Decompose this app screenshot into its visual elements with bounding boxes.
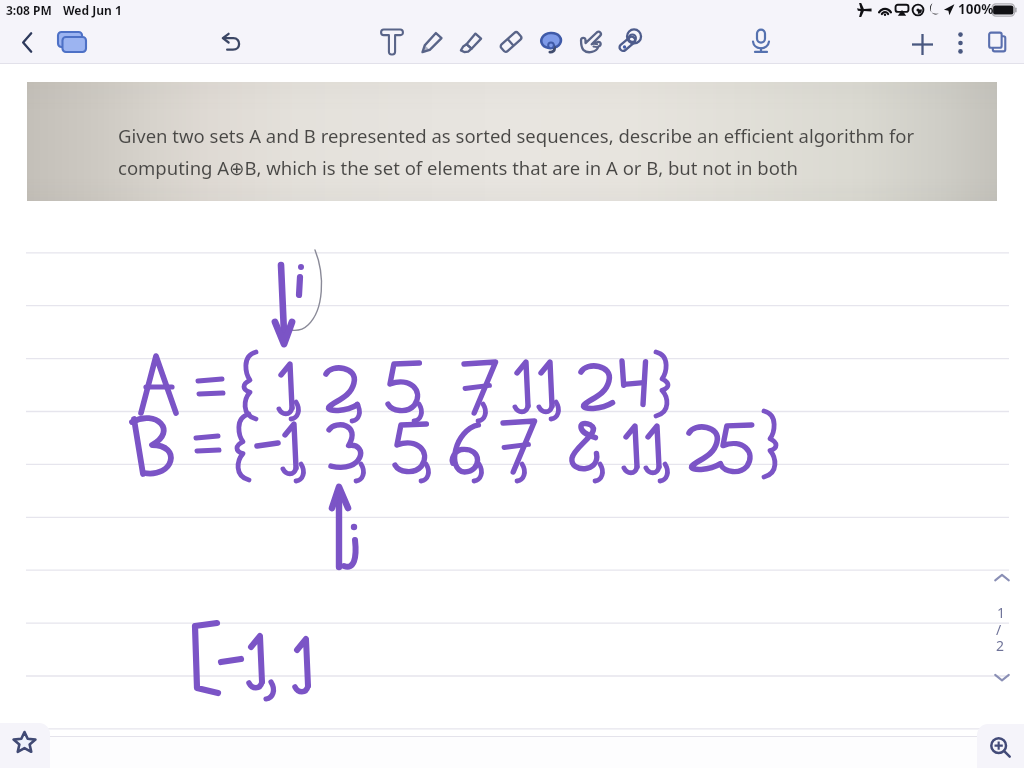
button[interactable]: Undo [216,27,246,57]
button[interactable]: Eraser [496,27,526,57]
button[interactable]: Back [12,27,42,57]
staticText: Given two sets A and B represented as so… [118,123,915,148]
button[interactable]: Zoom in [977,724,1024,768]
button[interactable]: Pen [417,27,447,57]
button[interactable]: Add [907,29,937,59]
button[interactable]: Lasso select [536,27,566,57]
button[interactable]: Laser pointer [614,27,644,57]
staticText: 100% [958,0,994,18]
button[interactable]: Text [377,27,407,57]
button[interactable]: Highlighter [456,27,486,57]
button[interactable]: Pages [57,27,87,57]
staticText: / [996,620,1002,639]
button[interactable]: Next page [987,664,1017,690]
staticText: computing A⊕B, which is the set of eleme… [118,155,799,180]
button[interactable]: Previous page [987,564,1017,590]
button[interactable]: Voice recording [746,26,776,56]
staticText: 1 [997,603,1006,622]
staticText: 2 [996,636,1005,655]
staticText: Wed Jun 1 [63,2,122,18]
button[interactable]: Bookmark [0,723,50,768]
button[interactable]: Duplicate page [983,27,1013,57]
staticText: 3:08 PM [6,2,52,18]
button[interactable]: Hand [575,27,605,57]
button[interactable]: More options [946,29,974,57]
button[interactable]: 1 [989,600,1015,656]
